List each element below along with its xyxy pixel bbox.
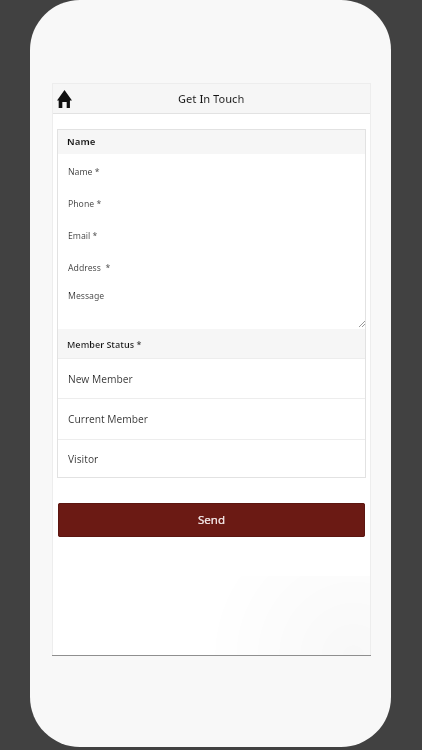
staticText: Visitor <box>68 452 99 466</box>
button[interactable]: Current Member <box>57 399 366 439</box>
staticText: Send <box>198 512 225 528</box>
button[interactable]: Home <box>52 83 80 114</box>
staticText: Name * <box>68 166 100 178</box>
staticText: Name <box>67 135 96 148</box>
button[interactable]: Message <box>57 284 366 329</box>
button[interactable]: Visitor <box>57 440 366 478</box>
staticText: Email * <box>68 230 98 242</box>
staticText: Member Status * <box>67 338 142 350</box>
button[interactable]: Name * <box>57 154 366 188</box>
button[interactable]: Email * <box>57 220 366 252</box>
button[interactable]: Phone * <box>57 188 366 220</box>
button[interactable]: New Member <box>57 359 366 398</box>
staticText: Phone * <box>68 198 102 210</box>
staticText: Message <box>68 290 105 301</box>
staticText: Address * <box>68 262 111 274</box>
staticText: Current Member <box>68 412 149 426</box>
staticText: New Member <box>68 372 133 386</box>
button[interactable]: Send <box>58 503 365 537</box>
staticText: Get In Touch <box>178 91 245 106</box>
button[interactable]: Address * <box>57 252 366 284</box>
